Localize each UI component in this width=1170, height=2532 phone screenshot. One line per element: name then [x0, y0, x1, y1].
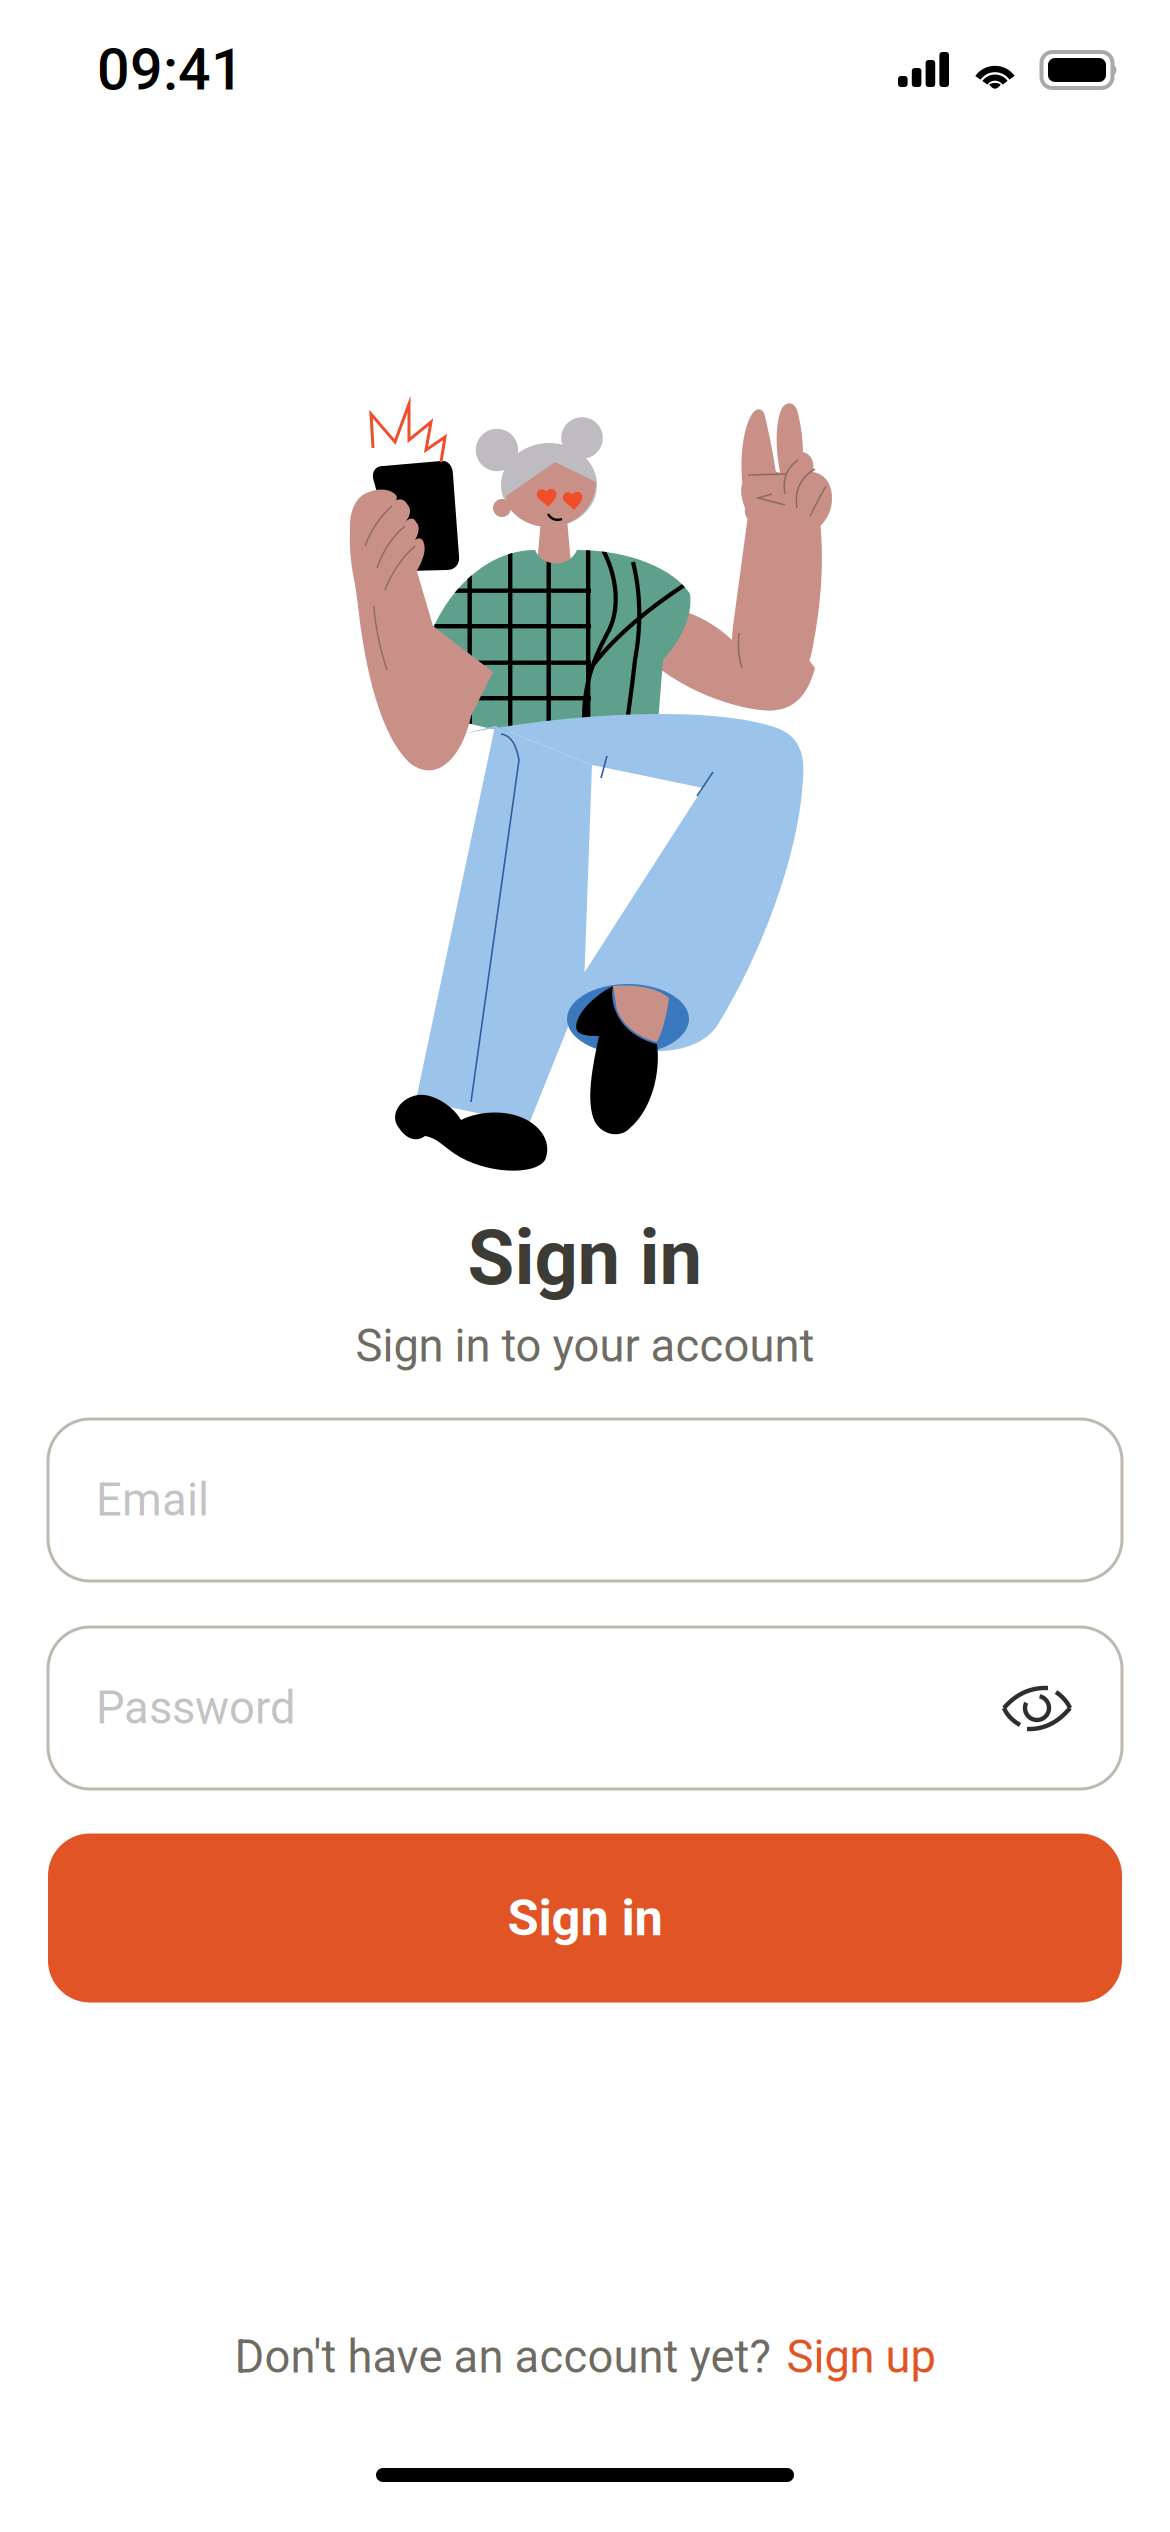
- staticText: 09:41: [97, 36, 244, 104]
- button[interactable]: Sign in: [48, 1833, 1122, 2002]
- button[interactable]: Show password: [1000, 1683, 1074, 1733]
- staticText: Sign up: [786, 2330, 935, 2383]
- staticText: Sign in: [507, 1888, 662, 1948]
- button[interactable]: Sign up: [786, 2330, 935, 2383]
- staticText: Sign in to your account: [355, 1319, 814, 1372]
- staticText: Sign in: [467, 1213, 702, 1303]
- staticText: Don't have an account yet?: [234, 2330, 770, 2383]
- staticText: Email: [96, 1473, 209, 1526]
- staticText: Password: [96, 1681, 296, 1734]
